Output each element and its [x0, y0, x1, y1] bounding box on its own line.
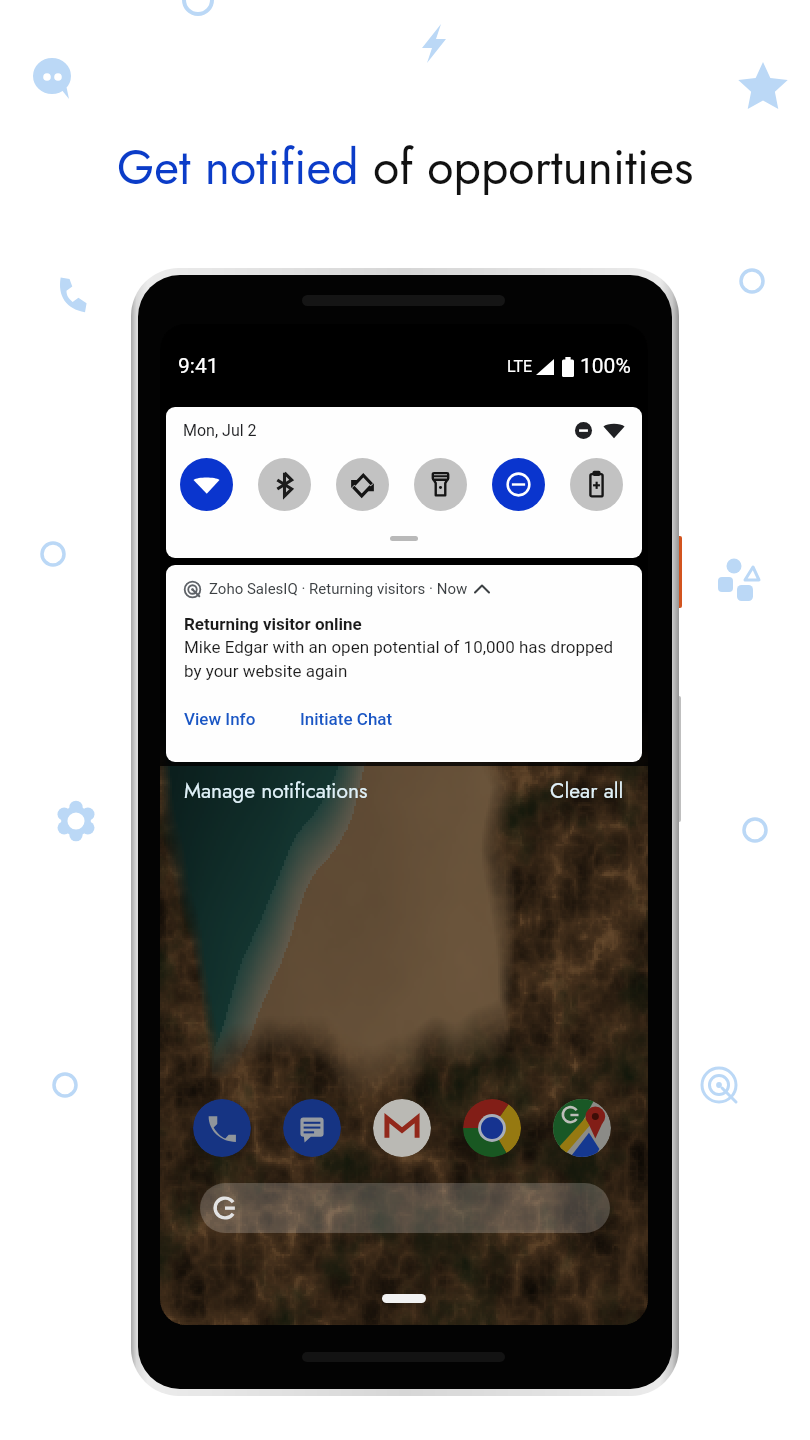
button[interactable]: Wi-Fi — [180, 458, 233, 511]
staticText: 9:41 — [178, 354, 219, 379]
button[interactable]: Messages — [283, 1099, 341, 1157]
button[interactable]: Gmail — [373, 1099, 431, 1157]
staticText: Mon, Jul 2 — [183, 421, 257, 440]
staticText: Get notified — [117, 133, 373, 202]
button[interactable]: Bluetooth — [258, 458, 311, 511]
staticText: Zoho SalesIQ · Returning visitors · Now — [209, 580, 468, 598]
button[interactable]: Battery saver — [570, 458, 623, 511]
button[interactable]: Flashlight — [414, 458, 467, 511]
staticText: of opportunities — [373, 133, 694, 202]
staticText: LTE — [507, 357, 533, 376]
button[interactable]: Manage notifications — [184, 776, 368, 806]
button[interactable]: Search — [200, 1183, 610, 1233]
button[interactable]: Phone — [193, 1099, 251, 1157]
button[interactable]: Initiate Chat — [300, 709, 393, 729]
staticText: Returning visitor online — [184, 614, 362, 634]
button[interactable]: Clear all — [550, 776, 624, 806]
button[interactable]: Zoho SalesIQ · Returning visitors · Now — [166, 565, 642, 762]
button[interactable]: View Info — [184, 709, 256, 729]
button[interactable]: Maps — [553, 1099, 611, 1157]
button[interactable]: Chrome — [463, 1099, 521, 1157]
staticText: 100% — [580, 354, 631, 379]
button[interactable]: Auto rotate — [336, 458, 389, 511]
staticText: Mike Edgar with an open potential of 10,… — [184, 637, 626, 681]
button[interactable]: Do not disturb — [492, 458, 545, 511]
